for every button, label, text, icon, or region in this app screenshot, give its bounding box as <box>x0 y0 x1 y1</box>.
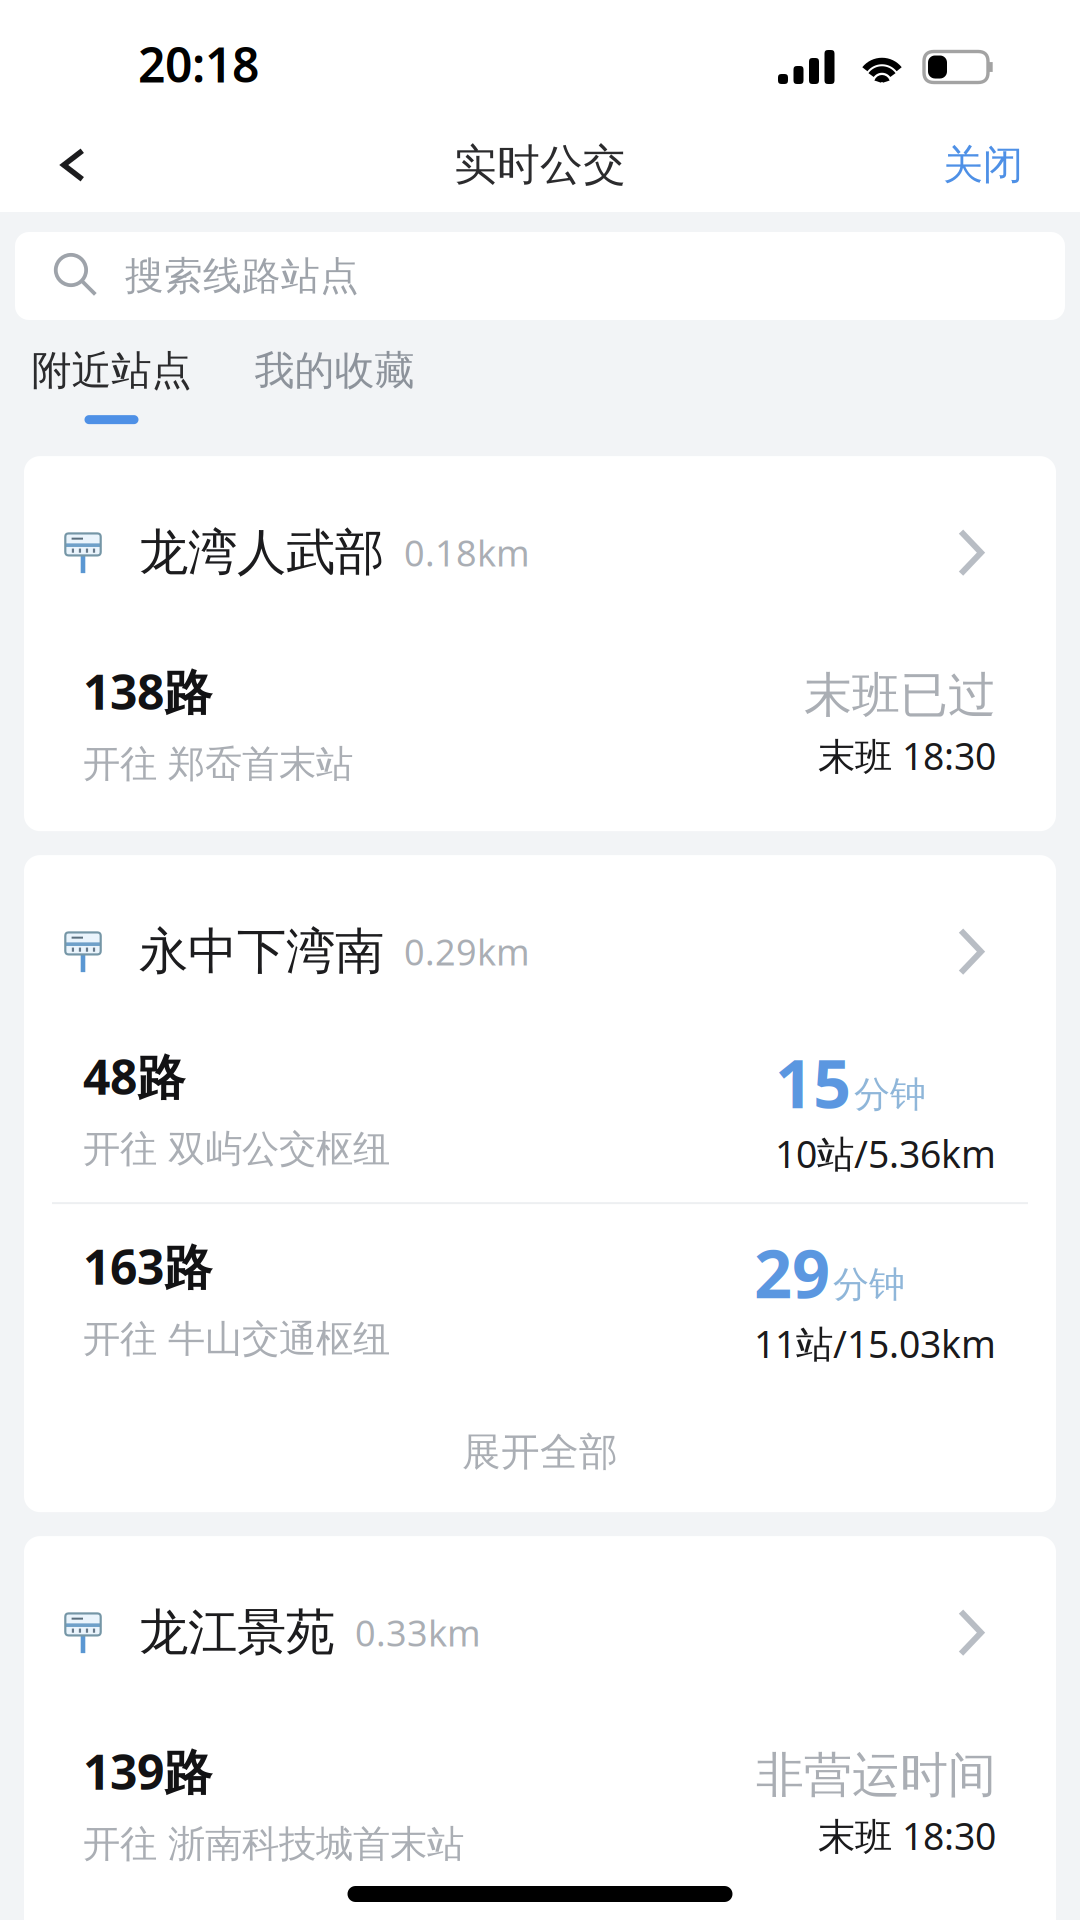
staticText: 48路 <box>83 1044 185 1108</box>
staticText: 开往 双屿公交枢纽 <box>83 1126 390 1172</box>
button[interactable]: 关闭 <box>908 110 1058 220</box>
staticText: 非营运时间 <box>756 1746 996 1805</box>
staticText: 龙江景苑 <box>139 1602 335 1663</box>
staticText: 20:18 <box>138 32 259 96</box>
staticText: 实时公交 <box>454 139 626 191</box>
staticText: 搜索线路站点 <box>125 252 359 300</box>
staticText: 0.33km <box>355 1609 481 1656</box>
staticText: 龙湾人武部 <box>139 522 384 583</box>
button[interactable]: 龙江景苑 <box>24 1536 1056 1695</box>
staticText: 11站/15.03km <box>754 1319 996 1368</box>
staticText: 分钟 <box>854 1072 926 1117</box>
staticText: 末班已过 <box>804 666 996 725</box>
button[interactable]: 138路 <box>24 615 1056 831</box>
button[interactable]: 48路 <box>24 1014 1056 1202</box>
staticText: 分钟 <box>833 1262 905 1307</box>
staticText: 开往 牛山交通枢纽 <box>83 1316 390 1362</box>
button[interactable]: 附近站点 <box>30 320 193 442</box>
button[interactable]: 展开全部 <box>24 1392 1056 1512</box>
staticText: 我的收藏 <box>254 346 414 395</box>
staticText: 末班 18:30 <box>818 731 996 780</box>
staticText: 0.29km <box>404 928 530 975</box>
staticText: 15 <box>775 1038 851 1127</box>
staticText: 末班 18:30 <box>818 1811 996 1860</box>
button[interactable]: 163路 <box>24 1204 1056 1392</box>
button[interactable]: 139路 <box>24 1695 1056 1911</box>
staticText: 0.18km <box>404 529 530 576</box>
staticText: 139路 <box>83 1739 212 1803</box>
staticText: 138路 <box>83 659 212 723</box>
staticText: 开往 郑岙首末站 <box>83 741 353 787</box>
staticText: 29 <box>754 1228 830 1317</box>
staticText: 附近站点 <box>31 346 191 395</box>
button[interactable]: 我的收藏 <box>253 320 416 456</box>
staticText: 关闭 <box>943 140 1023 189</box>
staticText: 永中下湾南 <box>139 921 384 982</box>
staticText: 展开全部 <box>462 1428 618 1476</box>
staticText: 开往 浙南科技城首末站 <box>83 1821 464 1867</box>
staticText: 163路 <box>83 1234 212 1298</box>
button[interactable]: 龙湾人武部 <box>24 456 1056 615</box>
staticText: 10站/5.36km <box>775 1129 996 1178</box>
button[interactable]: Back <box>18 110 128 220</box>
button[interactable]: 永中下湾南 <box>24 855 1056 1014</box>
